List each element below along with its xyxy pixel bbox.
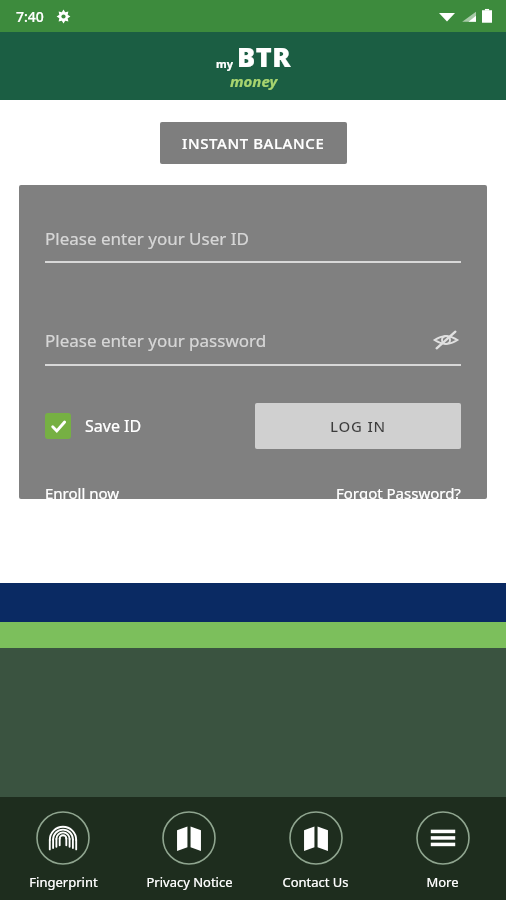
staticText: Enroll now <box>45 483 120 499</box>
button[interactable]: Please enter your password <box>45 325 461 366</box>
staticText: Please enter your User ID <box>45 227 249 250</box>
button[interactable]: Please enter your User ID <box>45 227 461 263</box>
button[interactable]: Privacy Notice <box>126 797 252 900</box>
staticText: 7:40 <box>16 7 44 26</box>
staticText: LOG IN <box>330 416 387 436</box>
staticText: Please enter your password <box>45 329 431 352</box>
button[interactable]: More <box>379 797 506 900</box>
staticText: Contact Us <box>282 873 349 891</box>
staticText: More <box>426 873 459 891</box>
staticText: money <box>230 71 278 91</box>
staticText: Fingerprint <box>29 873 98 891</box>
button[interactable]: Show password <box>431 325 461 355</box>
button[interactable]: LOG IN <box>255 403 461 449</box>
button[interactable]: Contact Us <box>252 797 379 900</box>
button[interactable]: Save ID <box>45 413 142 439</box>
button[interactable]: Fingerprint <box>0 797 126 900</box>
staticText: Privacy Notice <box>146 873 233 891</box>
staticText: BTR <box>237 38 291 75</box>
staticText: INSTANT BALANCE <box>182 133 325 153</box>
button[interactable]: Enroll now <box>45 483 120 499</box>
button[interactable]: Forgot Password? <box>336 483 461 499</box>
staticText: my <box>216 56 234 71</box>
button[interactable]: INSTANT BALANCE <box>160 122 347 164</box>
staticText: Forgot Password? <box>336 483 461 499</box>
staticText: Save ID <box>85 415 142 437</box>
